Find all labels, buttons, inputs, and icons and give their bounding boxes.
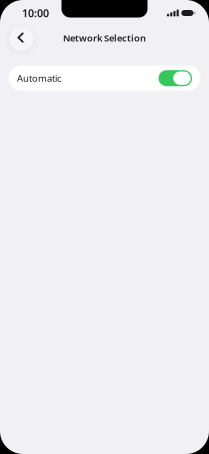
staticText: Automatic: [17, 72, 61, 84]
staticText: Network Selection: [63, 32, 146, 44]
button[interactable]: Back: [9, 27, 33, 51]
button[interactable]: Automatic: [8, 66, 200, 91]
staticText: 10:00: [22, 6, 49, 20]
